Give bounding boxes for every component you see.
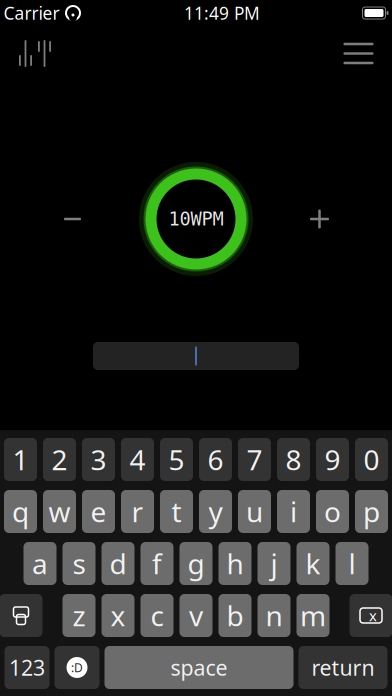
staticText: e <box>90 493 106 530</box>
staticText: g <box>187 545 204 582</box>
staticText: n <box>265 597 282 634</box>
button[interactable]: Speed 10 words per minute <box>137 160 255 278</box>
button[interactable]: m <box>296 594 329 637</box>
staticText: 9 <box>324 441 340 478</box>
staticText: f <box>152 545 162 582</box>
staticText: u <box>246 493 263 530</box>
staticText: 6 <box>207 441 223 478</box>
button[interactable]: o <box>316 490 349 533</box>
button[interactable]: Menu <box>336 36 380 71</box>
button[interactable]: r <box>121 490 154 533</box>
button[interactable]: d <box>101 542 134 585</box>
button[interactable]: 0 <box>355 438 388 481</box>
button[interactable]: Delete <box>349 594 392 637</box>
button[interactable]: 4 <box>121 438 154 481</box>
button[interactable]: 123 <box>4 646 49 689</box>
staticText: 10WPM <box>168 208 223 230</box>
button[interactable]: 3 <box>82 438 115 481</box>
button[interactable]: 9 <box>316 438 349 481</box>
button[interactable]: 2 <box>43 438 76 481</box>
staticText: c <box>150 597 163 634</box>
button[interactable]: g <box>179 542 212 585</box>
staticText: a <box>32 545 48 582</box>
staticText: 7 <box>246 441 262 478</box>
button[interactable] <box>93 342 299 370</box>
button[interactable]: 8 <box>277 438 310 481</box>
staticText: 0 <box>363 441 379 478</box>
button[interactable]: n <box>257 594 290 637</box>
staticText: 5 <box>168 441 184 478</box>
button[interactable]: i <box>277 490 310 533</box>
staticText: Carrier <box>3 1 59 24</box>
staticText: 8 <box>285 441 301 478</box>
button[interactable]: 5 <box>160 438 193 481</box>
button[interactable]: k <box>296 542 329 585</box>
button[interactable]: w <box>43 490 76 533</box>
staticText: w <box>48 493 70 530</box>
button[interactable]: Swap direction <box>11 33 58 74</box>
button[interactable]: Increase speed <box>298 198 340 240</box>
staticText: i <box>290 493 297 530</box>
staticText: s <box>72 545 85 582</box>
button[interactable]: a <box>23 542 56 585</box>
button[interactable]: return <box>298 646 387 689</box>
button[interactable]: f <box>140 542 173 585</box>
staticText: m <box>300 597 326 634</box>
staticText: 2 <box>51 441 67 478</box>
button[interactable]: Shift <box>0 594 42 637</box>
staticText: y <box>208 493 222 530</box>
button[interactable]: x <box>101 594 134 637</box>
button[interactable]: l <box>335 542 368 585</box>
staticText: h <box>226 545 243 582</box>
staticText: p <box>363 493 380 530</box>
button[interactable]: q <box>4 490 37 533</box>
staticText: l <box>348 545 355 582</box>
button[interactable]: t <box>160 490 193 533</box>
button[interactable]: b <box>218 594 251 637</box>
button[interactable]: Emoji <box>54 646 99 689</box>
button[interactable]: h <box>218 542 251 585</box>
staticText: space <box>170 653 227 682</box>
staticText: 123 <box>9 653 45 682</box>
staticText: z <box>72 597 85 634</box>
button[interactable]: 1 <box>4 438 37 481</box>
staticText: 3 <box>90 441 106 478</box>
staticText: k <box>305 545 320 582</box>
staticText: b <box>226 597 243 634</box>
staticText: x <box>369 606 377 625</box>
staticText: return <box>311 653 374 682</box>
button[interactable]: u <box>238 490 271 533</box>
button[interactable]: y <box>199 490 232 533</box>
staticText: o <box>324 493 341 530</box>
button[interactable]: s <box>62 542 95 585</box>
button[interactable]: 7 <box>238 438 271 481</box>
button[interactable]: space <box>104 646 293 689</box>
button[interactable]: e <box>82 490 115 533</box>
staticText: r <box>131 493 143 530</box>
button[interactable]: c <box>140 594 173 637</box>
staticText: 1 <box>12 441 28 478</box>
button[interactable]: z <box>62 594 95 637</box>
staticText: 4 <box>129 441 145 478</box>
staticText: x <box>110 597 125 634</box>
staticText: t <box>171 493 181 530</box>
staticText: v <box>189 597 203 634</box>
staticText: q <box>12 493 29 530</box>
button[interactable]: j <box>257 542 290 585</box>
button[interactable]: 6 <box>199 438 232 481</box>
button[interactable]: Decrease speed <box>51 198 93 240</box>
staticText: d <box>109 545 126 582</box>
button[interactable]: p <box>355 490 388 533</box>
button[interactable]: v <box>179 594 212 637</box>
staticText: j <box>270 545 277 582</box>
staticText: :D <box>71 659 83 675</box>
staticText: 11:49 PM <box>184 1 260 24</box>
